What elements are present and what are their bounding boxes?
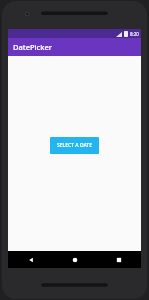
button[interactable]: SELECT A DATE [50,137,99,154]
staticText: 8:20 [130,31,139,37]
button[interactable]: Back [8,251,53,268]
staticText: SELECT A DATE [57,142,92,149]
button[interactable]: Home [53,251,97,268]
button[interactable]: Recents [97,251,141,268]
staticText: DatePicker [13,42,52,52]
